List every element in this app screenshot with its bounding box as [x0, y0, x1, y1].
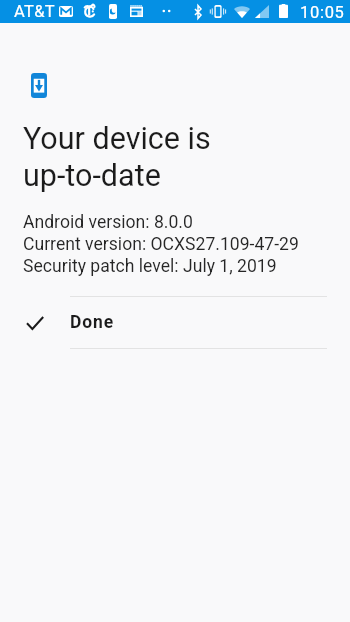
staticText: 10:05	[300, 3, 345, 22]
staticText: Your device is up-to-date	[23, 121, 211, 193]
staticText: AT&T	[14, 2, 55, 21]
button[interactable]: Done	[0, 297, 350, 348]
staticText: Done	[70, 312, 115, 333]
other: System update	[31, 73, 47, 98]
staticText: Android version: 8.0.0 Current version: …	[23, 212, 299, 277]
